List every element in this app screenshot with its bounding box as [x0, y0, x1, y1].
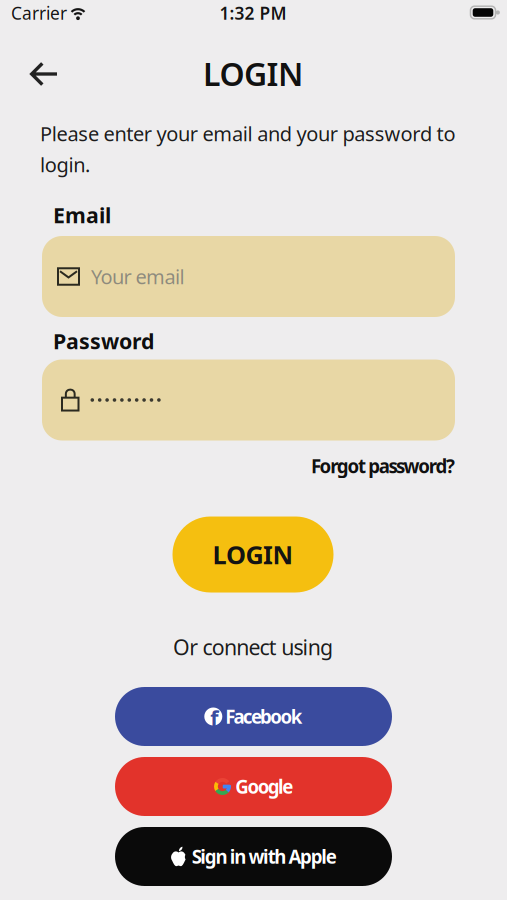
staticText: Email: [53, 201, 111, 229]
staticText: Sign in with Apple: [192, 844, 337, 869]
staticText: Please enter your email and your passwor…: [40, 120, 455, 178]
button[interactable]: f: [115, 687, 392, 746]
button[interactable]: Your email: [42, 236, 455, 317]
staticText: Carrier: [11, 1, 67, 24]
staticText: LOGIN: [203, 52, 303, 95]
button[interactable]: Password: [42, 359, 455, 440]
staticText: Facebook: [225, 704, 303, 729]
staticText: Google: [235, 774, 293, 799]
button[interactable]: LOGIN: [172, 516, 333, 592]
staticText: 1:32 PM: [219, 1, 286, 24]
button[interactable]: Back: [22, 53, 65, 95]
button[interactable]: Forgot password?: [311, 454, 455, 478]
staticText: Password: [53, 327, 154, 355]
staticText: LOGIN: [212, 538, 293, 571]
button[interactable]: Sign in with Apple: [115, 827, 392, 886]
staticText: Forgot password?: [311, 454, 455, 478]
staticText: Your email: [91, 263, 184, 290]
button[interactable]: Google: [115, 757, 392, 816]
staticText: Or connect using: [173, 633, 333, 661]
staticText: f: [210, 704, 218, 732]
